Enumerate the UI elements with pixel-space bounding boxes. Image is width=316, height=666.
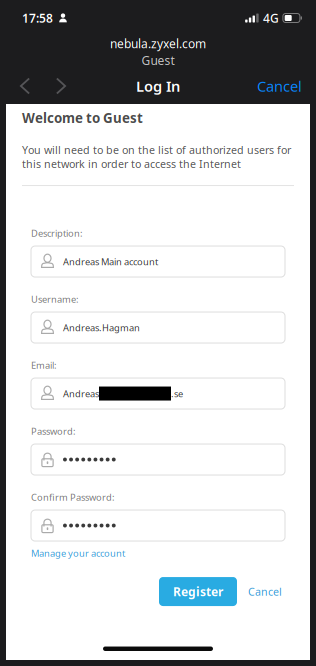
staticText: Password: [31,425,76,437]
button[interactable] [31,510,285,541]
staticText: .se [171,387,183,400]
staticText: Description: [31,227,83,239]
staticText: Username: [31,293,79,305]
button[interactable] [31,444,285,475]
button[interactable]: Andreas [31,378,285,409]
staticText: Cancel [248,584,282,599]
button[interactable]: Andreas.Hagman [31,312,285,343]
staticText: nebula.zyxel.com [110,36,206,51]
button[interactable]: Cancel [248,577,282,606]
button[interactable]: Manage your account [31,546,125,560]
staticText: Register [173,584,223,599]
staticText: Andreas Main account [63,255,158,268]
staticText: Confirm Password: [31,491,115,503]
staticText: Welcome to Guest [22,109,143,127]
button[interactable]: Back [7,70,43,102]
button[interactable]: Andreas Main account [31,246,285,277]
staticText: Cancel [257,76,302,96]
staticText: You will need to be on the list of autho… [22,143,291,171]
button[interactable]: Forward [43,70,79,102]
staticText: Manage your account [31,547,125,559]
button[interactable]: Cancel [257,70,302,102]
staticText: 17:58 [22,10,53,26]
staticText: Guest [141,52,174,68]
staticText: Email: [31,359,57,371]
staticText: Andreas.Hagman [63,321,140,334]
staticText: Log In [136,76,180,96]
button[interactable]: Register [159,577,237,606]
staticText: 4G [263,10,279,26]
staticText: Andreas [63,387,99,400]
